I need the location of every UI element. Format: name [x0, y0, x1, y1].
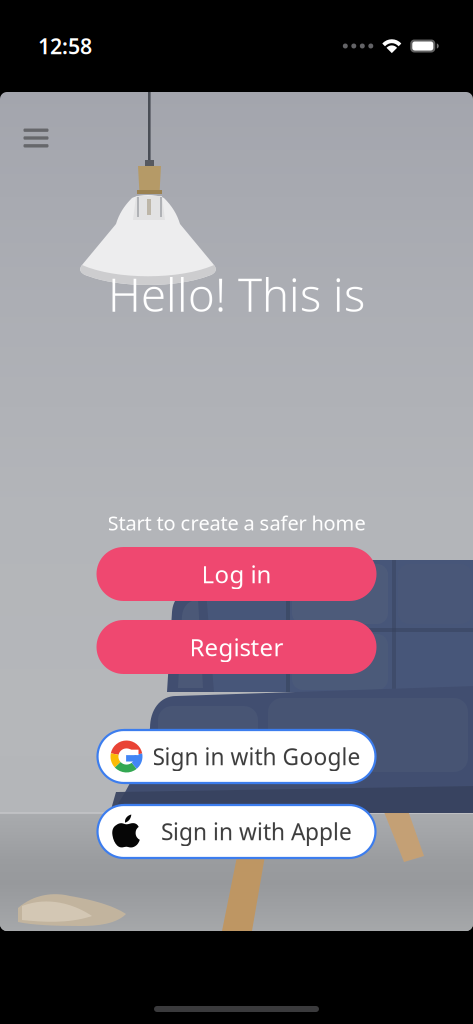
- staticText: Start to create a safer home: [107, 509, 365, 536]
- staticText: Register: [189, 631, 283, 663]
- button[interactable]: Log in: [96, 547, 376, 601]
- staticText: Log in: [201, 558, 271, 590]
- staticText: Sign in with Apple: [161, 816, 352, 846]
- staticText: 12:58: [38, 32, 92, 60]
- staticText: Sign in with Google: [152, 741, 360, 771]
- button[interactable]: Menu: [14, 116, 58, 160]
- button[interactable]: Sign in with Apple: [97, 805, 375, 858]
- button[interactable]: Sign in with Google: [97, 730, 375, 783]
- staticText: Hello! This is: [108, 264, 365, 324]
- button[interactable]: Register: [96, 620, 376, 674]
